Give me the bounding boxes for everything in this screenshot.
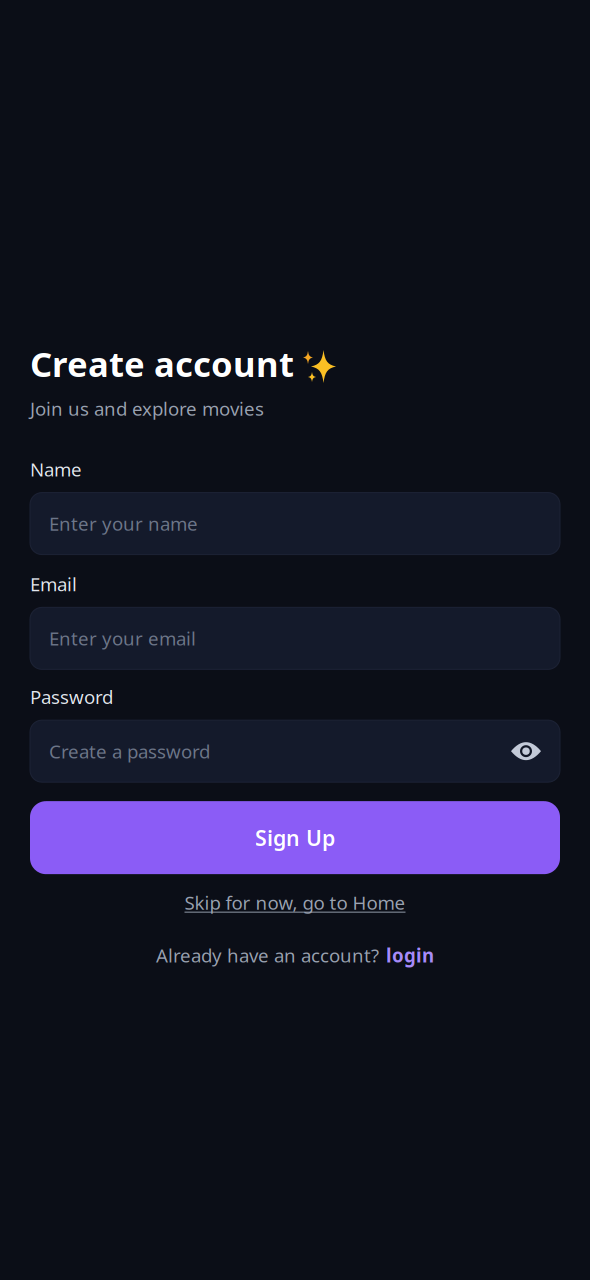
- button[interactable]: Enter your email: [30, 607, 560, 669]
- staticText: Enter your email: [49, 626, 196, 651]
- staticText: Password: [30, 684, 113, 709]
- staticText: Name: [30, 457, 82, 482]
- staticText: Sign Up: [255, 823, 335, 852]
- button[interactable]: Create a password: [30, 720, 560, 782]
- button[interactable]: Enter your name: [30, 493, 560, 555]
- staticText: Create account: [30, 340, 294, 386]
- staticText: Skip for now, go to Home: [184, 890, 405, 915]
- button[interactable]: login: [386, 943, 434, 968]
- button[interactable]: Show password: [509, 734, 543, 768]
- button[interactable]: Skip for now, go to Home: [184, 890, 405, 915]
- staticText: Create a password: [49, 739, 210, 764]
- staticText: login: [386, 943, 434, 968]
- staticText: Email: [30, 572, 77, 596]
- staticText: Join us and explore movies: [30, 396, 264, 421]
- staticText: Enter your name: [49, 511, 198, 536]
- staticText: Already have an account?: [156, 943, 379, 968]
- button[interactable]: Sign Up: [30, 801, 560, 874]
